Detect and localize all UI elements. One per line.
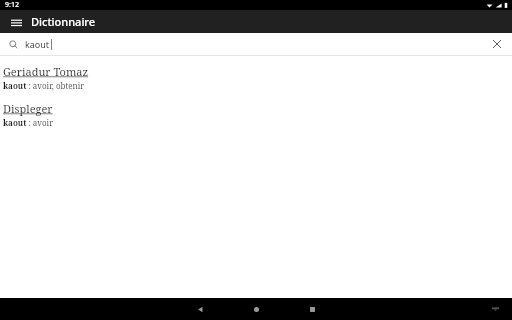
button[interactable]: Back <box>183 298 217 320</box>
staticText: Dictionnaire <box>31 14 96 29</box>
button[interactable]: Open navigation menu <box>7 13 25 31</box>
button[interactable]: Geriadur Tomaz <box>0 64 512 91</box>
staticText: kaout : avoir <box>3 117 53 128</box>
button[interactable]: kaout <box>0 33 512 55</box>
staticText: 9:12 <box>5 0 19 10</box>
staticText: kaout <box>25 38 50 50</box>
staticText: kaout : avoir, obtenir <box>3 80 85 91</box>
button[interactable]: Recent apps <box>295 298 329 320</box>
staticText: Displeger <box>3 101 53 116</box>
button[interactable]: Clear search <box>489 36 505 52</box>
button[interactable]: Hide keyboard <box>488 302 502 316</box>
staticText: Geriadur Tomaz <box>3 64 89 79</box>
button[interactable]: Home <box>239 298 273 320</box>
button[interactable]: Displeger <box>0 101 512 128</box>
